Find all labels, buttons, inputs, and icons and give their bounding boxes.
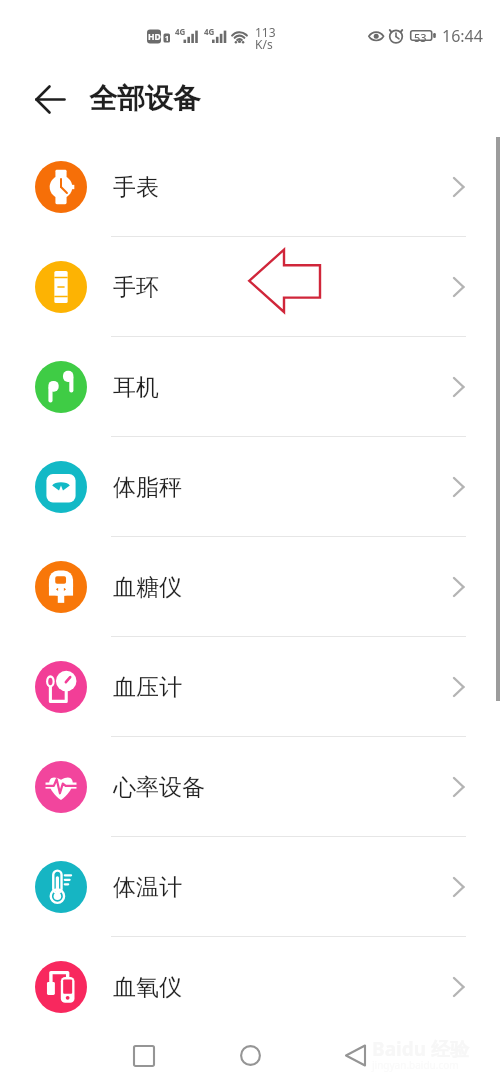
button[interactable]: 耳机: [0, 337, 500, 437]
staticText: 16:44: [442, 25, 483, 47]
staticText: 4G: [175, 26, 186, 37]
button[interactable]: 血氧仪: [0, 937, 500, 1037]
button[interactable]: Recents: [121, 1033, 166, 1078]
button[interactable]: 血糖仪: [0, 537, 500, 637]
staticText: 手表: [113, 173, 159, 202]
staticText: 血氧仪: [113, 973, 182, 1002]
staticText: 血糖仪: [113, 573, 182, 602]
button[interactable]: 体温计: [0, 837, 500, 937]
staticText: HD: [148, 31, 161, 43]
staticText: 113: [255, 24, 276, 40]
staticText: 1: [165, 34, 170, 44]
staticText: 手环: [113, 273, 159, 302]
staticText: Baidu 经验: [372, 1036, 469, 1062]
staticText: 53: [414, 30, 427, 45]
button[interactable]: Back: [333, 1033, 378, 1078]
button[interactable]: 手表: [0, 137, 500, 237]
button[interactable]: Back: [26, 75, 74, 123]
staticText: 体温计: [113, 873, 182, 902]
staticText: 心率设备: [113, 773, 205, 802]
staticText: 体脂秤: [113, 473, 182, 502]
staticText: 全部设备: [89, 81, 201, 116]
staticText: K/s: [255, 36, 273, 52]
staticText: 4G: [204, 26, 215, 37]
button[interactable]: 血压计: [0, 637, 500, 737]
button[interactable]: 心率设备: [0, 737, 500, 837]
button[interactable]: 体脂秤: [0, 437, 500, 537]
staticText: 耳机: [113, 373, 159, 402]
button[interactable]: Home: [228, 1033, 273, 1078]
button[interactable]: 手环: [0, 237, 500, 337]
staticText: 血压计: [113, 673, 182, 702]
